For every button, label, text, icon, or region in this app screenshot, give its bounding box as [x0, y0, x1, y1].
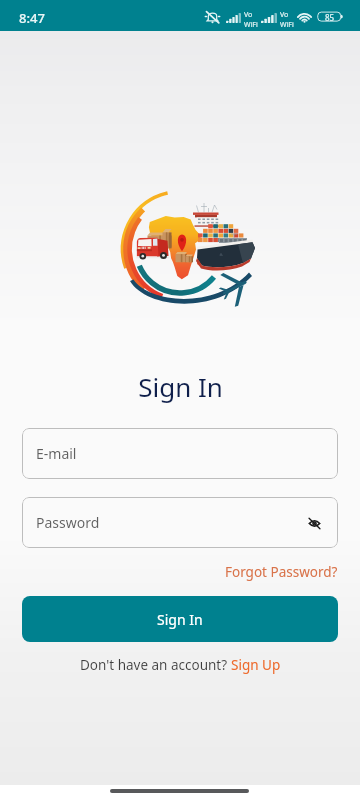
staticText: Password	[36, 513, 100, 532]
button[interactable]: E-mail	[22, 428, 338, 479]
staticText: WiFi	[244, 20, 258, 30]
staticText: E-mail	[36, 444, 77, 463]
button[interactable]: Sign In	[22, 596, 338, 642]
button[interactable]: Forgot Password?	[224, 561, 339, 583]
staticText: Vo	[244, 10, 253, 20]
staticText: 8:47	[19, 9, 45, 27]
staticText: Vo	[280, 10, 289, 20]
staticText: Don't have an account?	[80, 656, 231, 674]
button[interactable]: Sign Up	[231, 656, 281, 674]
staticText: Sign In	[138, 369, 223, 404]
button[interactable]: Password	[22, 497, 338, 548]
staticText: 85	[325, 12, 335, 23]
staticText: WiFi	[280, 20, 294, 30]
button[interactable]: Show password	[302, 511, 326, 535]
staticText: Sign In	[157, 610, 203, 629]
